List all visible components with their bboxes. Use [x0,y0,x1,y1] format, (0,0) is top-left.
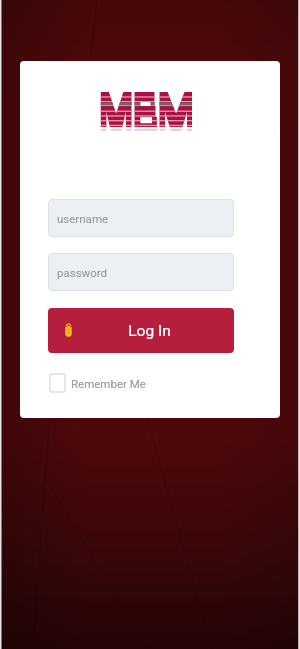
staticText: username [57,212,109,225]
button[interactable]: Secure login [48,308,234,353]
staticText: Remember Me [71,377,146,390]
other: Secure login [65,324,72,337]
button[interactable]: Remember Me [49,373,146,393]
staticText: password [57,266,108,279]
button[interactable]: username [48,199,234,237]
staticText: Log In [128,322,171,340]
button[interactable]: password [48,253,234,291]
